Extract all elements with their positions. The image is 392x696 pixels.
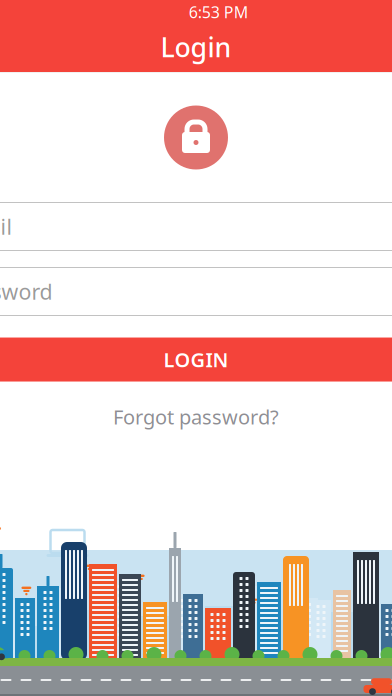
button[interactable]: Email [0, 202, 392, 250]
button[interactable]: Forgot password? [101, 395, 291, 438]
staticText: 6:53 PM [189, 1, 249, 23]
button[interactable]: Password [0, 267, 392, 315]
staticText: Login [160, 29, 231, 65]
staticText: Forgot password? [113, 403, 279, 430]
button[interactable]: LOGIN [0, 337, 392, 381]
staticText: Password [0, 277, 52, 306]
staticText: Email [0, 212, 12, 241]
staticText: LOGIN [163, 346, 228, 373]
